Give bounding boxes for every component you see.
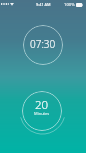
staticText: Minutes (34, 111, 50, 116)
button[interactable]: 20 (22, 91, 62, 131)
other: Wi-Fi (10, 2, 14, 6)
staticText: 20 (35, 97, 49, 113)
staticText: 9:41 AM (36, 2, 51, 7)
button[interactable]: 07:30 (23, 25, 63, 65)
staticText: 100% (64, 2, 75, 8)
other: Battery full (76, 3, 83, 7)
staticText: 07:30 (30, 37, 56, 51)
other: Signal strength (1, 3, 9, 5)
